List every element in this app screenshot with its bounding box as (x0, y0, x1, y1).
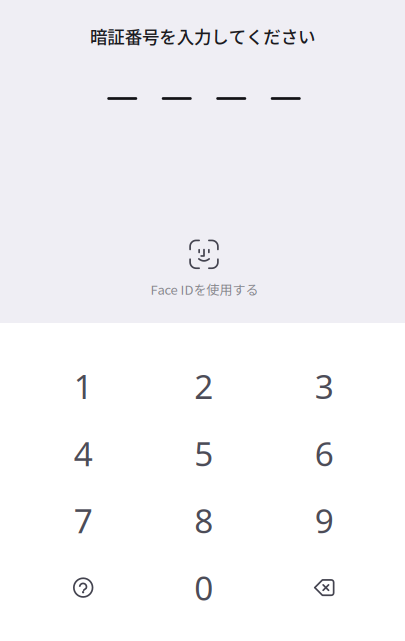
button[interactable]: 削除 (264, 554, 384, 621)
staticText: 2 (194, 364, 213, 408)
staticText: 4 (74, 431, 93, 475)
staticText: 8 (194, 498, 213, 543)
button[interactable]: 1 (23, 352, 143, 420)
staticText: 5 (194, 431, 213, 475)
staticText: 0 (194, 565, 213, 610)
button[interactable]: Face IDを使用する (148, 240, 256, 300)
staticText: 3 (315, 364, 334, 408)
button[interactable]: 0 (143, 554, 264, 621)
button[interactable]: 8 (143, 487, 264, 554)
button[interactable]: ヘルプ (23, 554, 143, 621)
staticText: 9 (315, 498, 334, 543)
staticText: 1 (74, 364, 93, 408)
button[interactable]: 7 (23, 487, 143, 554)
button[interactable]: 6 (264, 420, 384, 487)
staticText: Face IDを使用する (150, 280, 258, 298)
button[interactable]: 9 (264, 487, 384, 554)
staticText: 6 (315, 431, 334, 475)
button[interactable]: 2 (143, 352, 264, 420)
staticText: 暗証番号を入力してください (90, 23, 315, 49)
button[interactable]: 5 (143, 420, 264, 487)
button[interactable]: 4 (23, 420, 143, 487)
staticText: 7 (74, 498, 93, 543)
button[interactable]: 3 (264, 352, 384, 420)
